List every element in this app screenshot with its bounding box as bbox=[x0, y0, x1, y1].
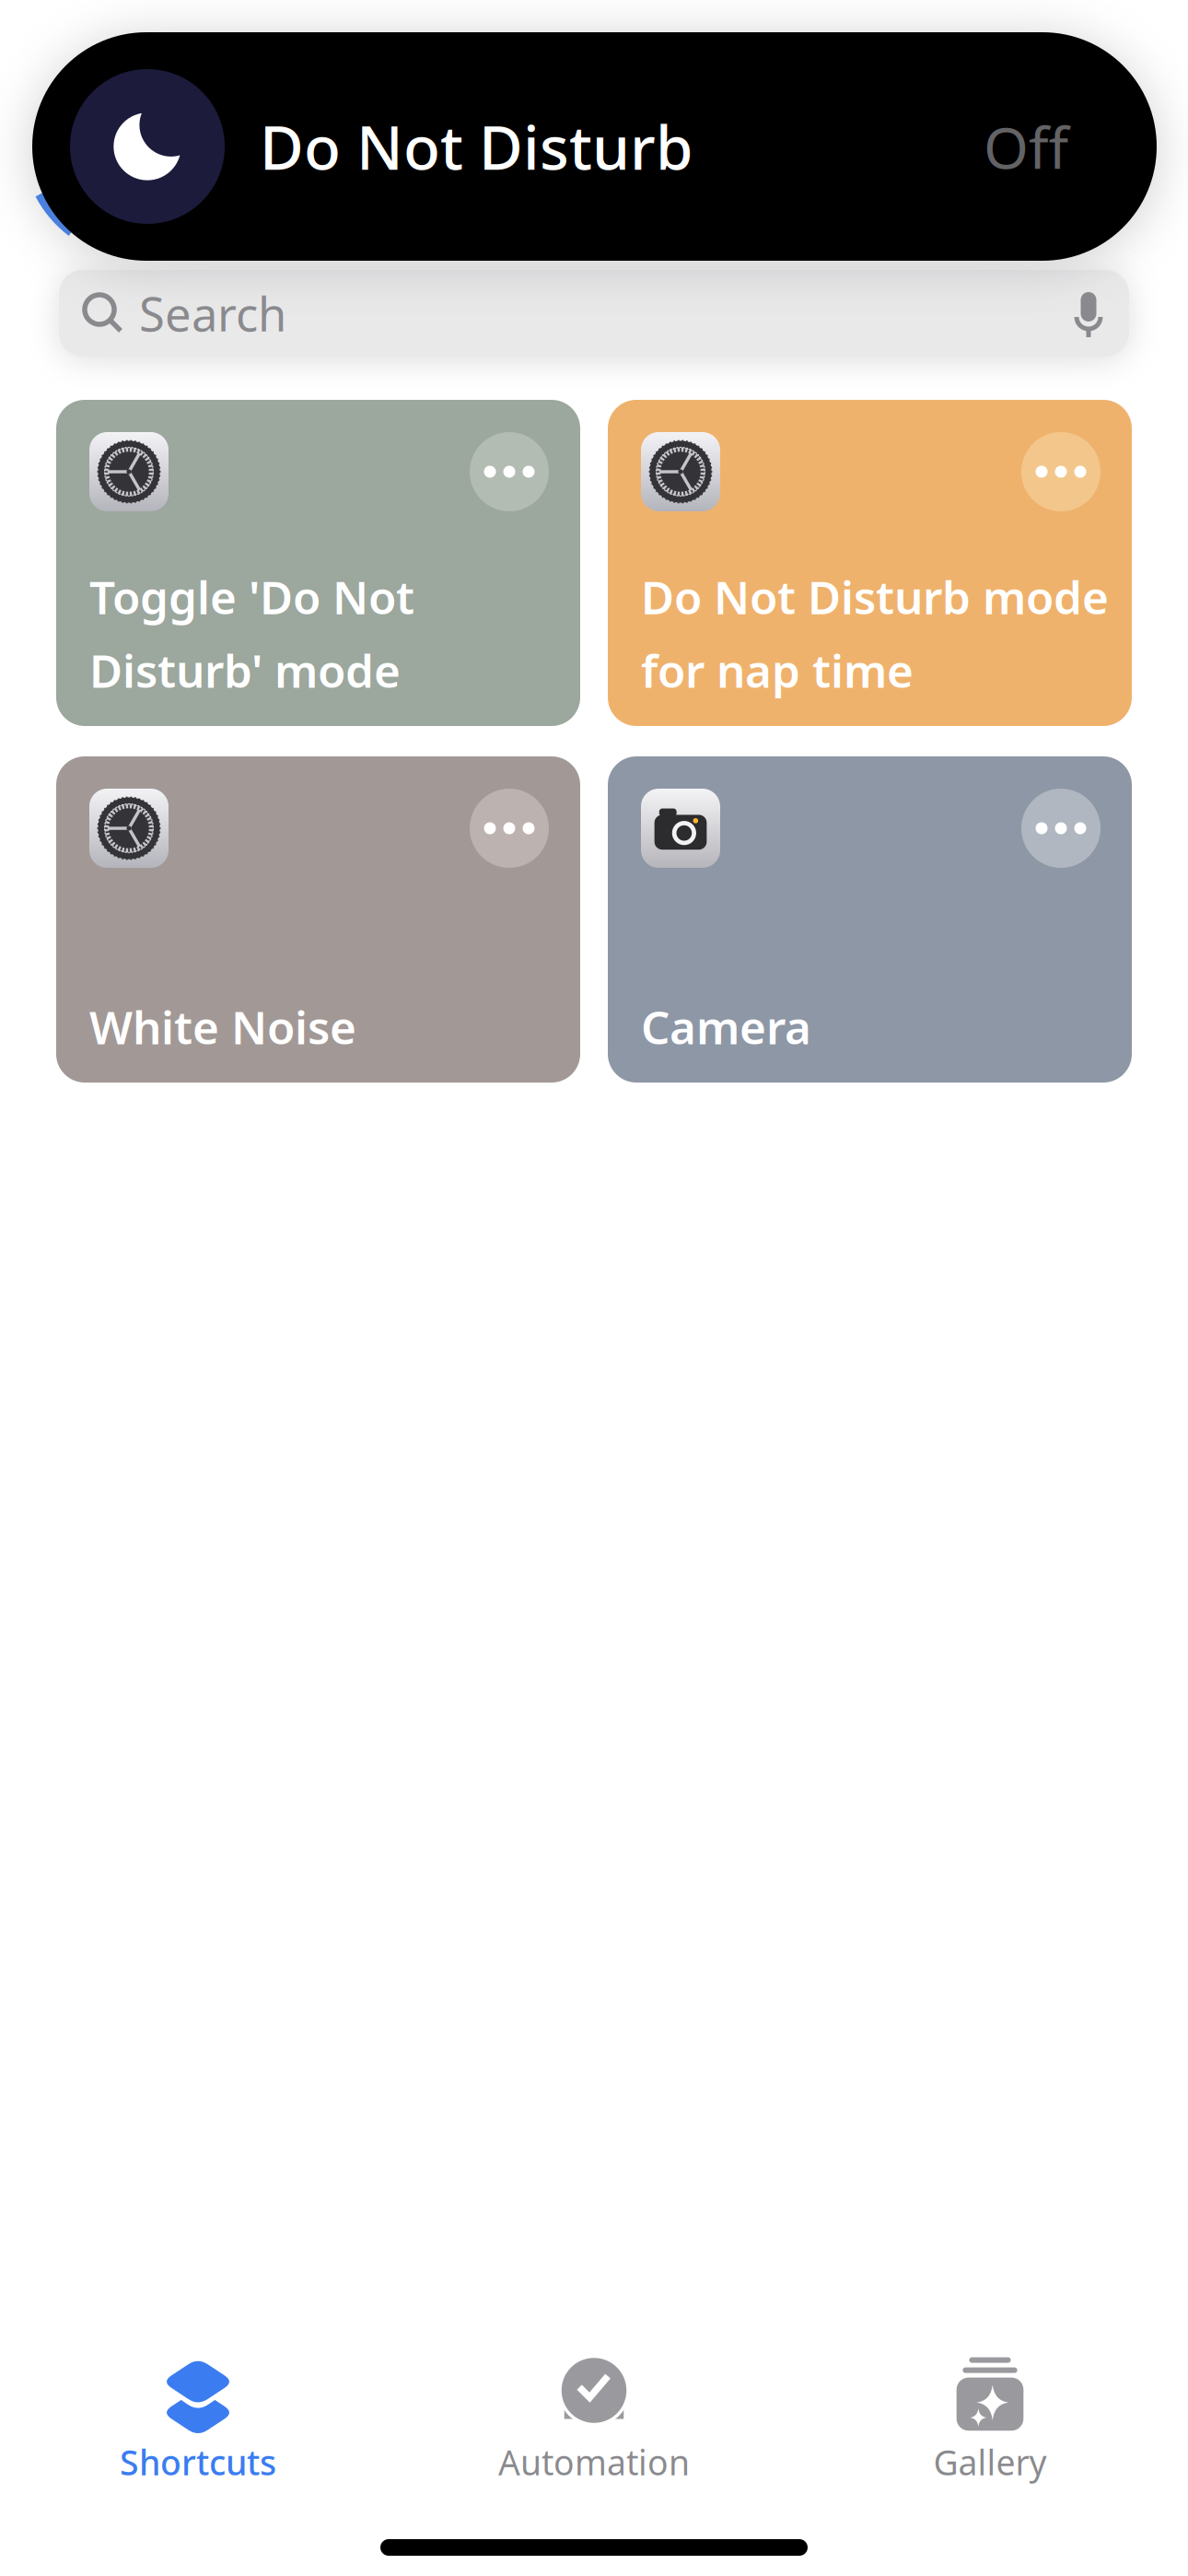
button[interactable]: Gallery bbox=[792, 2354, 1188, 2485]
button[interactable]: More options bbox=[1021, 432, 1101, 511]
button[interactable]: More options bbox=[470, 789, 549, 868]
staticText: Search bbox=[139, 282, 286, 344]
staticText: Do Not Disturb mode for nap time bbox=[641, 567, 1109, 700]
staticText: Shortcuts bbox=[120, 2439, 276, 2485]
button[interactable]: More options bbox=[1021, 789, 1101, 868]
button[interactable]: Search bbox=[59, 270, 1129, 357]
staticText: Off bbox=[984, 108, 1068, 185]
staticText: Gallery bbox=[933, 2439, 1047, 2485]
staticText: Automation bbox=[498, 2439, 690, 2485]
button[interactable]: More options bbox=[470, 432, 549, 511]
button[interactable]: White Noise bbox=[56, 756, 580, 1083]
staticText: Do Not Disturb bbox=[260, 107, 693, 186]
staticText: Camera bbox=[641, 996, 811, 1057]
button[interactable]: Shortcuts bbox=[0, 2354, 396, 2485]
button[interactable]: Camera bbox=[608, 756, 1132, 1083]
button[interactable]: Do Not Disturb mode for nap time bbox=[608, 400, 1132, 726]
staticText: Toggle 'Do Not Disturb' mode bbox=[89, 567, 414, 700]
staticText: White Noise bbox=[89, 996, 356, 1057]
button[interactable]: Toggle 'Do Not Disturb' mode bbox=[56, 400, 580, 726]
button[interactable]: Automation bbox=[396, 2354, 792, 2485]
button[interactable]: Dictate bbox=[1072, 289, 1105, 337]
button[interactable]: Do Not Disturb bbox=[32, 32, 1157, 261]
